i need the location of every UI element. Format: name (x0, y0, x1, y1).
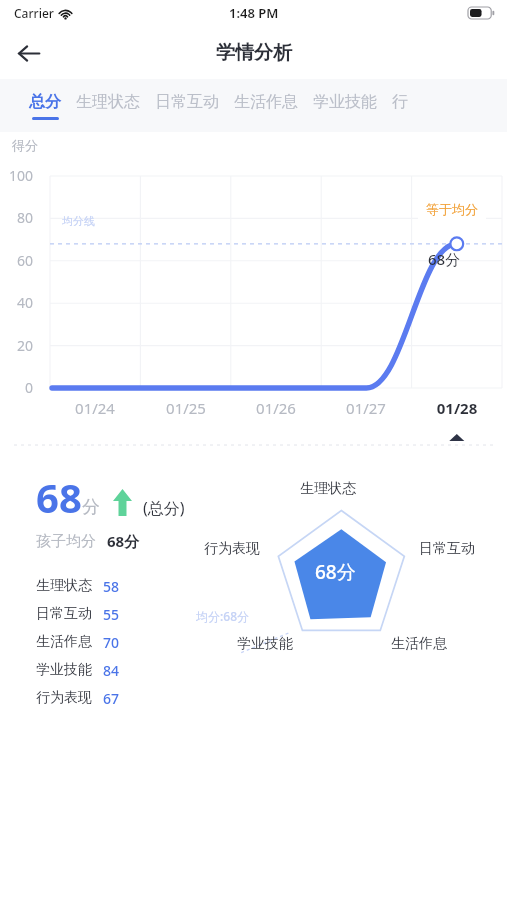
button[interactable]: 日常互动 (36, 600, 120, 628)
button[interactable]: 生活作息 (36, 628, 120, 656)
staticText: 生活作息 (234, 92, 298, 112)
staticText: 生理状态 (36, 577, 92, 595)
staticText: 行为表现 (36, 689, 92, 707)
staticText: 行 (392, 92, 408, 112)
staticText: 学业技能 (313, 92, 377, 112)
staticText: 68分 (315, 559, 356, 585)
button[interactable]: 等于均分 (418, 194, 486, 224)
staticText: 分 (82, 496, 100, 519)
button[interactable]: 行 (387, 92, 413, 120)
button[interactable]: 生理状态 (36, 572, 120, 600)
button[interactable]: 生活作息 (229, 92, 303, 120)
staticText: 学情分析 (216, 41, 292, 65)
staticText: 生理状态 (300, 480, 356, 498)
staticText: 日常互动 (419, 540, 475, 558)
button[interactable]: 生理状态 (71, 92, 145, 120)
staticText: 学业技能 (237, 635, 293, 653)
staticText: 生活作息 (36, 633, 92, 651)
button[interactable]: 学业技能 (36, 656, 120, 684)
staticText: Carrier (14, 5, 54, 21)
staticText: 68分 (428, 249, 461, 269)
staticText: 日常互动 (36, 605, 92, 623)
button[interactable]: 学业技能 (308, 92, 382, 120)
staticText: 行为表现 (204, 540, 260, 558)
staticText: 孩子均分 (36, 532, 96, 551)
staticText: 均分:68分 (196, 608, 249, 624)
staticText: 生理状态 (76, 92, 140, 112)
staticText: 68 (36, 470, 82, 524)
staticText: 1:48 PM (229, 4, 279, 22)
staticText: 等于均分 (426, 201, 478, 217)
staticText: 01/26 (244, 398, 308, 418)
button[interactable]: 日常互动 (150, 92, 224, 120)
staticText: 01/25 (154, 398, 218, 418)
staticText: 总分 (29, 92, 61, 112)
button[interactable]: 行为表现 (36, 684, 120, 712)
button[interactable]: Back (6, 31, 50, 75)
staticText: 80 (0, 208, 33, 227)
staticText: 70 (103, 633, 120, 652)
staticText: 均分线 (62, 214, 95, 228)
staticText: 68分 (107, 531, 140, 551)
staticText: 60 (0, 251, 33, 270)
staticText: 67 (103, 689, 120, 708)
staticText: 得分 (12, 137, 38, 153)
staticText: 0 (0, 378, 33, 397)
staticText: 20 (0, 336, 33, 355)
staticText: 55 (103, 605, 120, 624)
staticText: 58 (103, 577, 120, 596)
staticText: 40 (0, 293, 33, 312)
staticText: 日常互动 (155, 92, 219, 112)
staticText: 学业技能 (36, 661, 92, 679)
staticText: 100 (0, 166, 33, 185)
staticText: 01/28 (425, 398, 489, 418)
button[interactable]: 总分 (24, 92, 66, 120)
staticText: 生活作息 (391, 635, 447, 653)
staticText: 01/24 (63, 398, 127, 418)
staticText: 84 (103, 661, 120, 680)
staticText: (总分) (143, 497, 185, 519)
staticText: 01/27 (334, 398, 398, 418)
